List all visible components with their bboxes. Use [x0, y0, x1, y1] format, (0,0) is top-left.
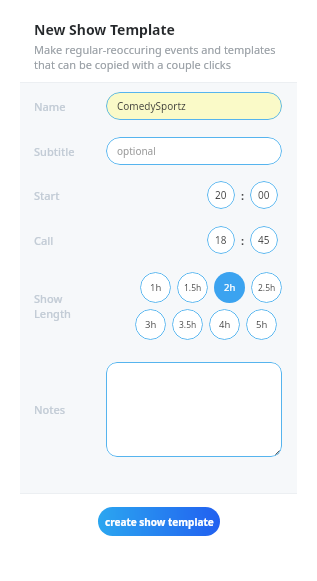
staticText: ComedySportz — [117, 99, 186, 113]
staticText: 4h — [219, 318, 231, 331]
button[interactable]: 3.5h — [172, 309, 203, 340]
staticText: Notes — [34, 402, 66, 417]
staticText: Subtitle — [34, 144, 75, 159]
button[interactable]: 18 — [207, 226, 235, 254]
button[interactable]: 1h — [140, 272, 171, 303]
staticText: 18 — [215, 233, 227, 247]
staticText: optional — [117, 144, 156, 158]
staticText: New Show Template — [34, 20, 175, 39]
staticText: 1h — [150, 281, 162, 294]
staticText: 3h — [145, 318, 157, 331]
staticText: 2.5h — [258, 282, 276, 294]
button[interactable]: 2.5h — [251, 272, 282, 303]
staticText: 20 — [215, 188, 227, 202]
staticText: 5h — [256, 318, 268, 331]
staticText: 00 — [258, 188, 270, 202]
button[interactable]: 3h — [135, 309, 166, 340]
button[interactable]: ComedySportz — [106, 92, 282, 120]
button[interactable]: optional — [106, 137, 282, 165]
staticText: Start — [34, 188, 60, 203]
staticText: : — [241, 233, 245, 248]
staticText: 1.5h — [184, 282, 202, 294]
button[interactable]: create show template — [98, 507, 220, 536]
staticText: 2h — [224, 281, 236, 294]
button[interactable]: 1.5h — [177, 272, 208, 303]
staticText: Make regular-reoccuring events and templ… — [34, 42, 283, 72]
staticText: Call — [34, 233, 54, 248]
button[interactable]: 4h — [209, 309, 240, 340]
button[interactable]: 5h — [246, 309, 277, 340]
staticText: 45 — [258, 233, 270, 247]
button[interactable]: 2h — [214, 272, 245, 303]
staticText: : — [241, 188, 245, 203]
staticText: create show template — [105, 515, 214, 529]
button[interactable]: 45 — [250, 226, 278, 254]
button[interactable]: 00 — [250, 181, 278, 209]
staticText: Show Length — [34, 291, 98, 321]
button[interactable]: 20 — [207, 181, 235, 209]
staticText: 3.5h — [179, 319, 197, 331]
button[interactable] — [106, 362, 282, 457]
staticText: Name — [34, 99, 66, 114]
